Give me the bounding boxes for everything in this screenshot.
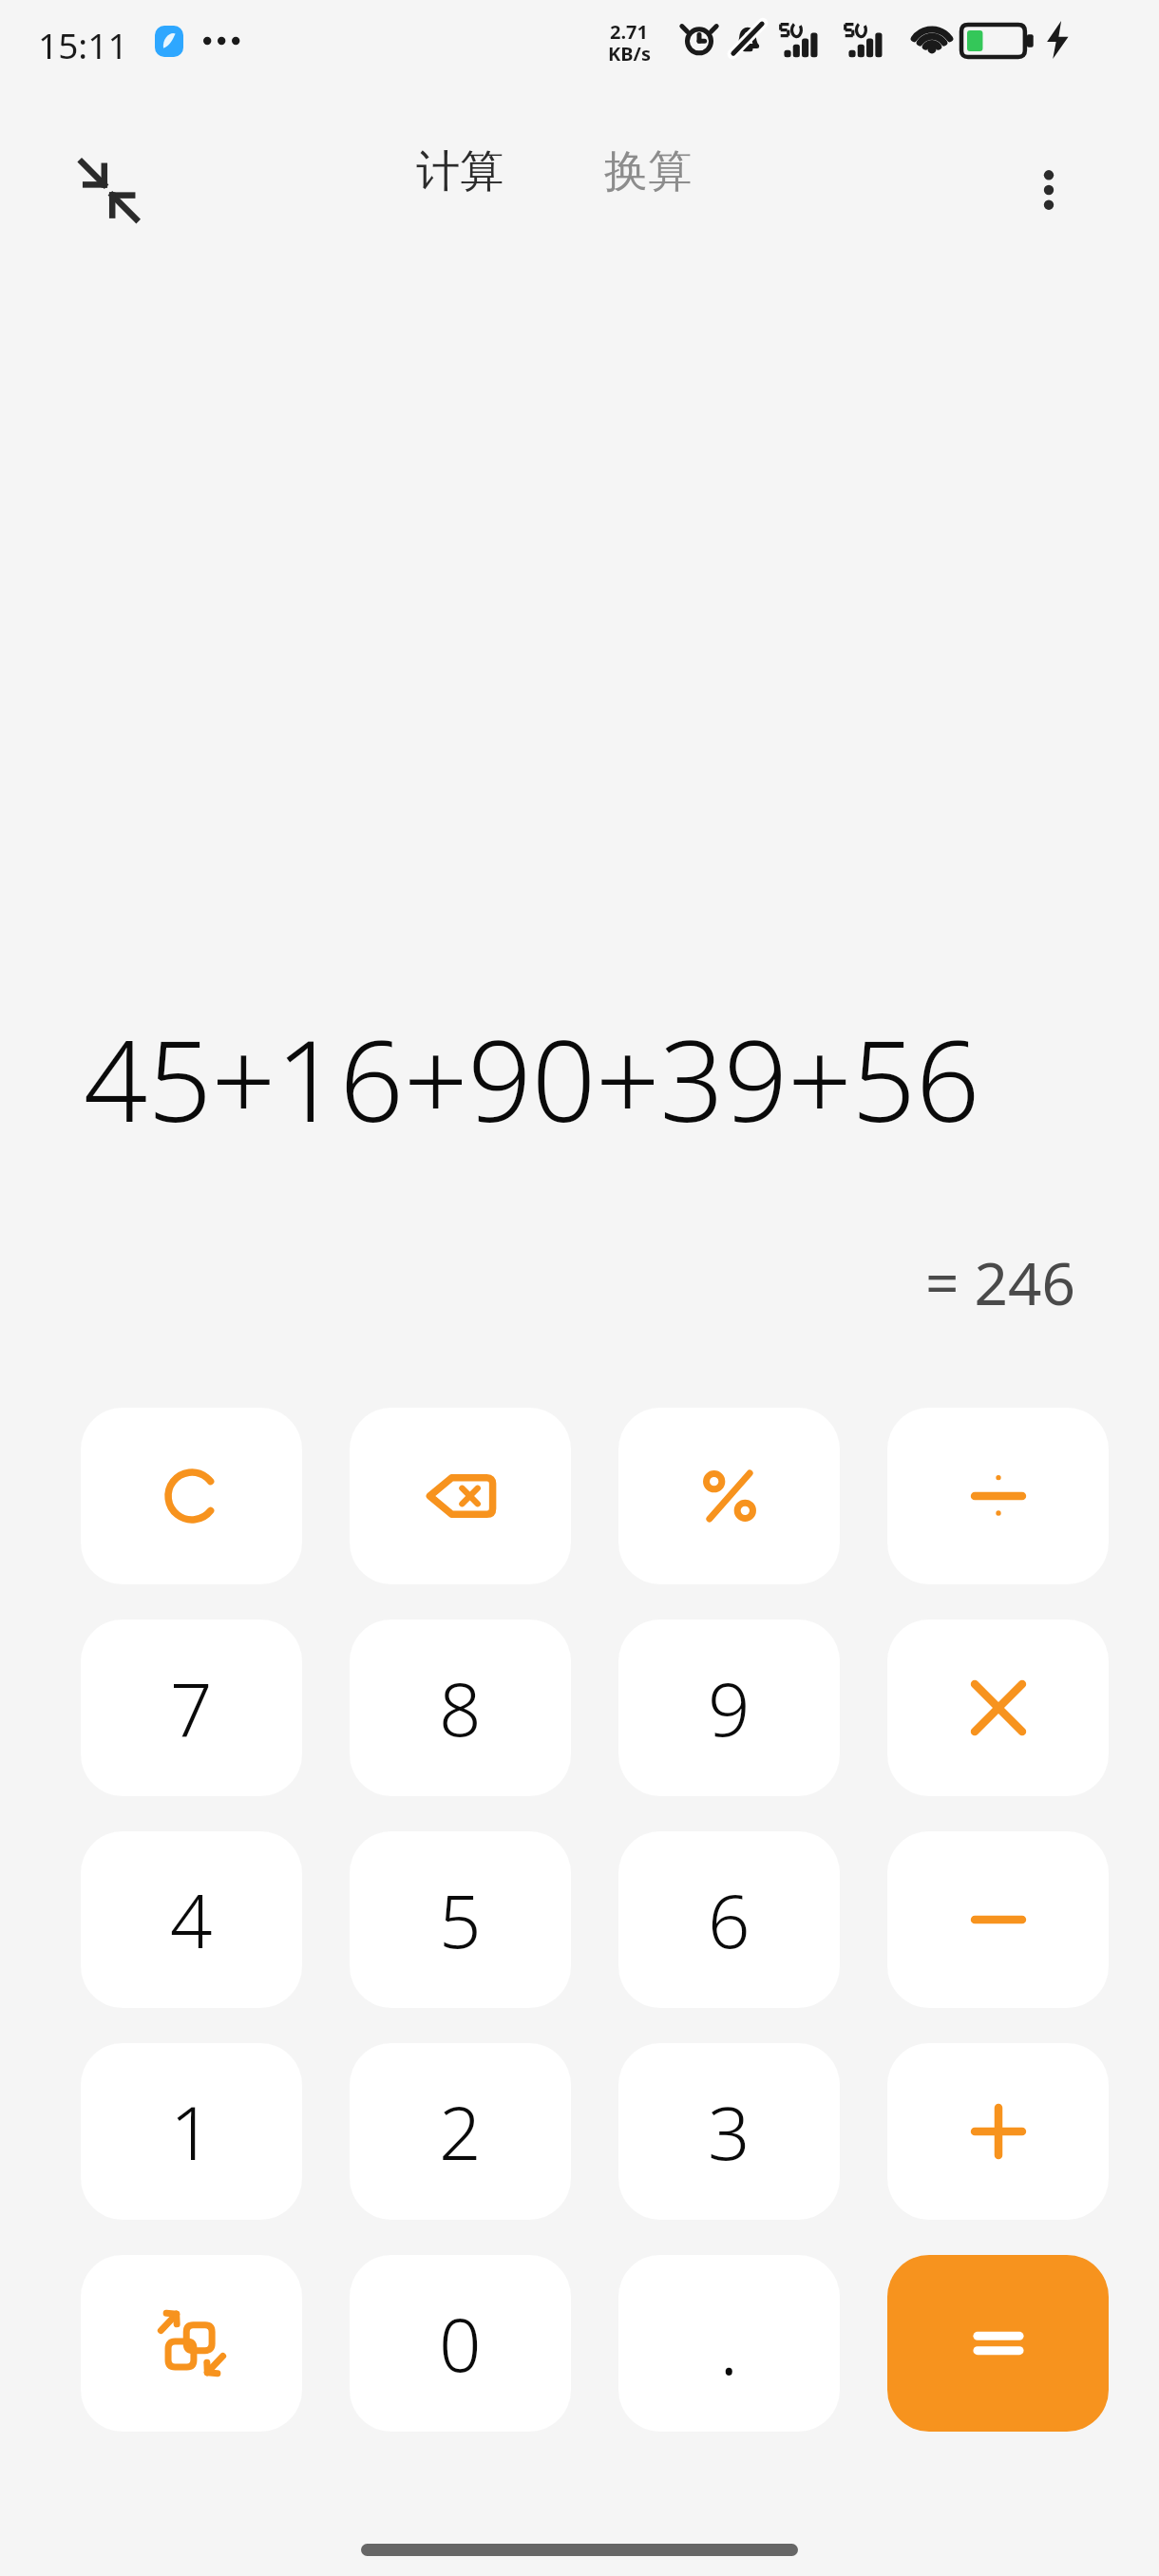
button[interactable]: Minus	[887, 1831, 1109, 2008]
button[interactable]: 4	[81, 1831, 302, 2008]
button[interactable]: Divide	[887, 1408, 1109, 1584]
staticText: 9	[708, 1657, 750, 1758]
staticText: 1	[170, 2081, 213, 2182]
button[interactable]: 7	[81, 1619, 302, 1796]
button[interactable]: Collapse	[59, 141, 158, 239]
button[interactable]: More options	[999, 141, 1098, 239]
staticText: 15:11	[38, 21, 128, 68]
staticText: 7	[170, 1657, 213, 1758]
staticText: = 246	[925, 1242, 1075, 1322]
button[interactable]: 3	[618, 2043, 840, 2220]
staticText: 换算	[604, 144, 692, 199]
staticText: 4	[170, 1869, 213, 1970]
button[interactable]: 6	[618, 1831, 840, 2008]
staticText: KB/s	[608, 41, 651, 66]
button[interactable]: 2	[350, 2043, 571, 2220]
button[interactable]: 9	[618, 1619, 840, 1796]
button[interactable]: Percent	[618, 1408, 840, 1584]
button[interactable]: Unit converter	[81, 2255, 302, 2432]
staticText: 计算	[416, 144, 503, 199]
button[interactable]: Plus	[887, 2043, 1109, 2220]
button[interactable]: 换算	[604, 144, 692, 199]
staticText: 6	[708, 1869, 750, 1970]
staticText: 8	[439, 1657, 482, 1758]
button[interactable]: 计算	[416, 144, 503, 199]
button[interactable]: Backspace	[350, 1408, 571, 1584]
button[interactable]: Equals	[887, 2255, 1109, 2432]
button[interactable]: 0	[350, 2255, 571, 2432]
button[interactable]: 8	[350, 1619, 571, 1796]
staticText: 45+16+90+39+56	[84, 1002, 980, 1135]
staticText: 0	[439, 2293, 482, 2394]
button[interactable]: Multiply	[887, 1619, 1109, 1796]
button[interactable]: .	[618, 2255, 840, 2432]
staticText: 2.71	[610, 19, 648, 45]
staticText: 2	[439, 2081, 482, 2182]
button[interactable]: 5	[350, 1831, 571, 2008]
staticText: 3	[708, 2081, 750, 2182]
button[interactable]: 1	[81, 2043, 302, 2220]
button[interactable]: Clear	[81, 1408, 302, 1584]
staticText: 5	[439, 1869, 482, 1970]
staticText: .	[719, 2289, 739, 2397]
